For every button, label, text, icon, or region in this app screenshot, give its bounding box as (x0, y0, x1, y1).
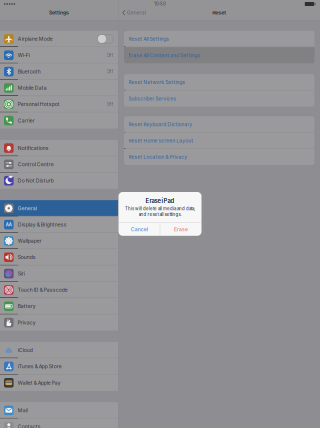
button[interactable]: Do Not Disturb (0, 173, 118, 189)
button[interactable]: Mail (0, 402, 118, 418)
button[interactable]: Wallpaper (0, 233, 118, 249)
staticText: Airplane Mode (18, 36, 53, 42)
staticText: Sounds (18, 254, 36, 260)
staticText: iTunes & App Store (18, 363, 62, 369)
staticText: Off (106, 69, 113, 74)
staticText: Battery (18, 303, 36, 309)
button[interactable]: Siri (0, 265, 118, 282)
staticText: Subscriber Services (129, 95, 177, 102)
button[interactable]: Mobile Data (0, 80, 118, 96)
staticText: Personal Hotspot (18, 101, 60, 107)
staticText: Erase iPad (145, 197, 174, 204)
staticText: Mobile Data (18, 85, 47, 91)
button[interactable]: Control Centre (0, 156, 118, 173)
button[interactable]: Airplane Mode (0, 31, 118, 47)
staticText: Cancel (131, 226, 148, 232)
button[interactable]: Reset Keyboard Dictionary (124, 116, 314, 132)
button[interactable]: iCloud (0, 342, 118, 358)
button[interactable]: Reset All Settings (124, 31, 314, 47)
button[interactable]: Touch ID & Passcode (0, 282, 118, 298)
staticText: Reset Network Settings (129, 79, 186, 85)
button[interactable]: Erase (160, 223, 201, 236)
staticText: Reset (212, 9, 226, 16)
button[interactable]: iTunes & App Store (0, 358, 118, 375)
staticText: This will delete all media and data, (125, 206, 195, 211)
staticText: Erase (174, 226, 188, 232)
staticText: Reset All Settings (129, 36, 170, 42)
button[interactable]: Reset Home Screen Layout (124, 132, 314, 149)
button[interactable]: Reset Network Settings (124, 74, 314, 90)
staticText: Touch ID & Passcode (18, 287, 68, 293)
staticText: Control Centre (18, 161, 54, 167)
staticText: Display & Brightness (18, 222, 67, 228)
staticText: Wallpaper (18, 238, 42, 244)
button[interactable]: Subscriber Services (124, 90, 314, 107)
button[interactable]: Reset Location & Privacy (124, 149, 314, 165)
staticText: Reset Location & Privacy (129, 154, 188, 160)
button[interactable]: Cancel (118, 223, 160, 236)
button[interactable]: Privacy (0, 314, 118, 331)
button[interactable]: Notifications (0, 140, 118, 156)
button[interactable]: Bluetooth (0, 63, 118, 80)
staticText: Siri (18, 270, 25, 277)
staticText: Reset Home Screen Layout (129, 138, 194, 144)
staticText: AA (6, 222, 12, 227)
staticText: Privacy (18, 319, 36, 326)
button[interactable]: Personal Hotspot (0, 96, 118, 112)
button[interactable]: Wallet & Apple Pay (0, 375, 118, 391)
staticText: Do Not Disturb (18, 178, 54, 184)
staticText: Bluetooth (18, 68, 41, 75)
staticText: Mail (18, 407, 28, 413)
button[interactable]: Wi-Fi (0, 47, 118, 63)
button[interactable]: Sounds (0, 249, 118, 265)
button[interactable]: Contacts (0, 418, 118, 428)
staticText: Contacts (18, 424, 41, 428)
staticText: iCloud (18, 347, 33, 353)
staticText: 10:50 (154, 1, 166, 7)
staticText: General (127, 10, 146, 16)
button[interactable]: General (118, 10, 146, 20)
staticText: Off (106, 52, 113, 58)
staticText: Off (106, 101, 113, 107)
staticText: Erase All Content and Settings (129, 52, 201, 58)
staticText: Wallet & Apple Pay (18, 380, 61, 386)
staticText: and reset all settings. (138, 212, 181, 217)
staticText: Reset Keyboard Dictionary (129, 121, 193, 127)
button[interactable]: Carrier (0, 112, 118, 129)
staticText: General (18, 205, 37, 211)
staticText: Carrier (18, 117, 35, 124)
button[interactable]: Erase All Content and Settings (124, 47, 314, 63)
button[interactable]: General (0, 200, 118, 216)
staticText: Settings (49, 9, 69, 16)
staticText: Notifications (18, 145, 49, 151)
button[interactable]: AA (0, 216, 118, 233)
staticText: Wi-Fi (18, 52, 30, 58)
button[interactable]: Battery (0, 298, 118, 314)
